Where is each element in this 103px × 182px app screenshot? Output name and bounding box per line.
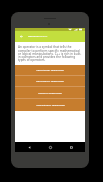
button[interactable]: ASSIGNMENT OPERATORS xyxy=(15,99,85,111)
button[interactable]: LOGICAL OPERATORS xyxy=(15,87,85,99)
button[interactable]: Recents xyxy=(64,142,78,152)
staticText: An operator is a symbol that tells the c… xyxy=(18,45,82,62)
button[interactable]: ARITHMETIC OPERATORS xyxy=(15,65,85,76)
button[interactable]: Home xyxy=(43,142,57,152)
button[interactable]: RELATIONAL OPERATORS xyxy=(15,76,85,87)
button[interactable]: Back xyxy=(22,142,36,152)
staticText: ARITHMETIC OPERATORS xyxy=(36,69,64,72)
staticText: ASSIGNMENT OPERATORS xyxy=(36,104,65,107)
button[interactable]: Navigate up xyxy=(15,31,28,42)
staticText: Operators in C++ xyxy=(28,34,48,37)
staticText: RELATIONAL OPERATORS xyxy=(36,80,64,83)
staticText: LOGICAL OPERATORS xyxy=(38,92,62,95)
